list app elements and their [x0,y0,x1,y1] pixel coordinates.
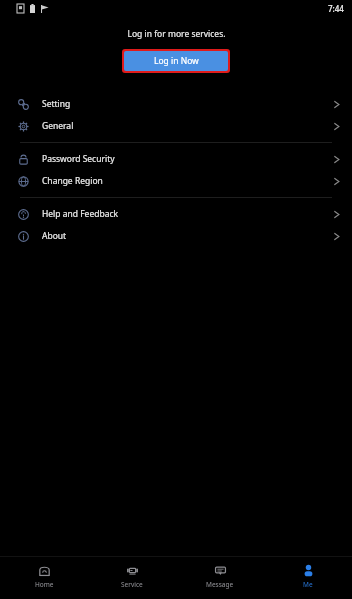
staticText: Log in Now [154,55,199,67]
staticText: Change Region [42,175,103,187]
button[interactable]: Help and Feedback [0,203,352,225]
staticText: Me [303,580,313,589]
staticText: Help and Feedback [42,208,119,220]
staticText: General [42,120,74,132]
staticText: About [42,230,67,242]
staticText: Service [121,580,143,589]
button[interactable]: Change Region [0,170,352,192]
staticText: Log in for more services. [127,28,226,40]
button[interactable]: Me [264,557,352,599]
button[interactable]: Log in Now [124,51,228,71]
staticText: Password Security [42,153,115,165]
button[interactable]: Home [0,557,88,599]
button[interactable]: Service [88,557,176,599]
button[interactable]: Message [176,557,264,599]
staticText: Message [206,580,234,589]
button[interactable]: Setting [0,93,352,115]
staticText: 7:44 [328,3,344,14]
button[interactable]: General [0,115,352,137]
button[interactable]: About [0,225,352,247]
button[interactable]: Password Security [0,148,352,170]
staticText: Setting [42,98,71,110]
staticText: Home [35,580,54,589]
